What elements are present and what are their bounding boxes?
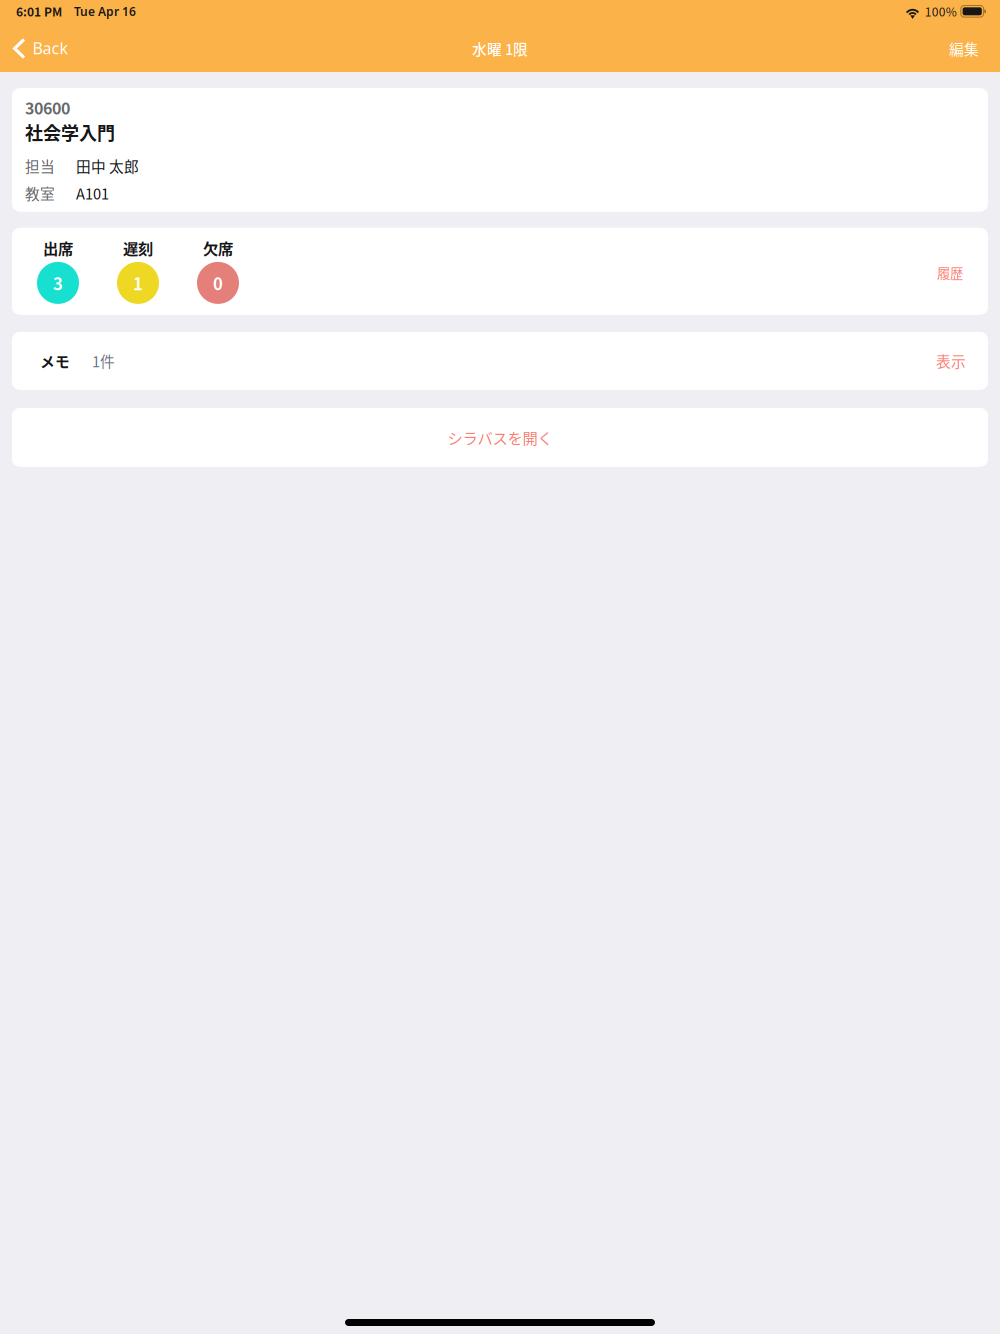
staticText: 表示 xyxy=(936,350,966,371)
staticText: 6:01 PM xyxy=(16,3,62,20)
staticText: 社会学入門 xyxy=(25,119,115,145)
staticText: 担当 xyxy=(25,155,55,176)
staticText: 0 xyxy=(213,271,223,295)
button[interactable]: Back xyxy=(0,28,79,72)
staticText: 3 xyxy=(53,271,63,295)
staticText: 編集 xyxy=(949,38,979,59)
button[interactable]: 表示 xyxy=(924,341,975,380)
staticText: 30600 xyxy=(25,96,70,119)
button[interactable]: 履歴 xyxy=(925,237,975,288)
staticText: 出席 xyxy=(43,237,73,259)
staticText: 遅刻 xyxy=(123,237,153,259)
staticText: A101 xyxy=(76,182,109,204)
button[interactable]: シラバスを開く xyxy=(12,408,988,467)
button[interactable]: 編集 xyxy=(936,28,1000,72)
staticText: 100% xyxy=(925,3,957,20)
staticText: 1 xyxy=(133,271,143,295)
staticText: Back xyxy=(33,37,69,59)
staticText: 教室 xyxy=(25,182,55,204)
staticText: 田中 太郎 xyxy=(76,155,139,176)
staticText: 履歴 xyxy=(937,263,963,282)
staticText: シラバスを開く xyxy=(447,426,552,448)
staticText: Tue Apr 16 xyxy=(74,3,136,19)
staticText: 欠席 xyxy=(203,237,233,259)
staticText: 1件 xyxy=(92,350,115,371)
staticText: 水曜 1限 xyxy=(472,38,528,59)
staticText: メモ xyxy=(40,350,70,371)
